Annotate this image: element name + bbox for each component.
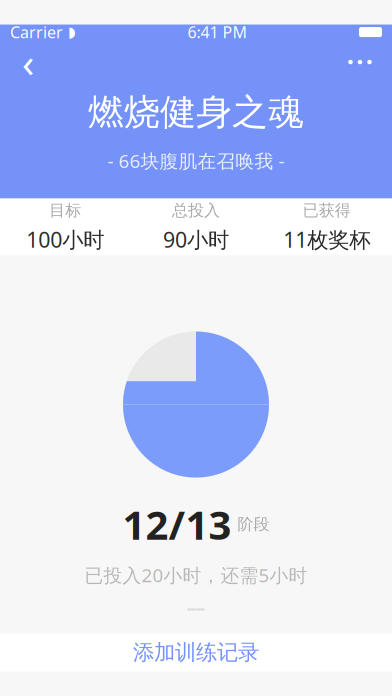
staticText: 总投入 (172, 201, 220, 220)
staticText: 燃烧健身之魂 (88, 90, 304, 134)
staticText: 11枚奖杯 (283, 225, 370, 253)
staticText: 添加训练记录 (133, 639, 259, 666)
staticText: 12/13 (122, 497, 231, 551)
staticText: Carrier (10, 21, 63, 43)
button[interactable]: Show more (164, 595, 228, 623)
staticText: 目标 (49, 201, 81, 220)
staticText: 100小时 (26, 225, 104, 253)
staticText: ‹ (22, 35, 34, 89)
staticText: - 66块腹肌在召唤我 - (107, 148, 284, 173)
staticText: 90小时 (163, 225, 229, 253)
staticText: 已投入20小时，还需5小时 (84, 563, 307, 587)
staticText: 阶段 (237, 514, 269, 534)
staticText: 已获得 (303, 201, 351, 220)
staticText: ◗ (68, 24, 76, 40)
button[interactable]: More options (334, 42, 386, 82)
button[interactable]: 添加训练记录 (0, 633, 392, 671)
button[interactable]: Back (6, 42, 50, 82)
staticText: 6:41 PM (187, 21, 247, 43)
